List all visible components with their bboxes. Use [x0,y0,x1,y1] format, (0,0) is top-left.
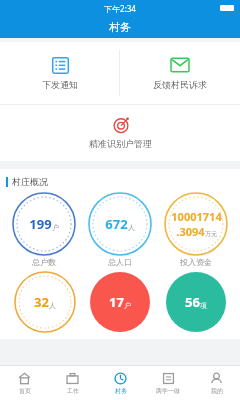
button[interactable]: 10001714 [164,192,228,267]
button[interactable]: 17 [89,271,151,333]
button[interactable]: 反馈村民诉求 [120,42,240,104]
staticText: 首页 [19,387,31,395]
staticText: 下午2:34 [104,3,136,14]
button[interactable]: 工作 [48,366,96,400]
staticText: 672 [105,215,128,233]
staticText: 人 [128,223,135,232]
staticText: 总户数 [32,257,56,267]
staticText: 投入资金 [180,257,212,267]
staticText: 下发通知 [42,79,78,90]
button[interactable]: 两学一做 [144,366,192,400]
staticText: 两学一做 [156,387,180,395]
staticText: 村务 [115,387,127,395]
button[interactable]: 村务 [96,366,144,400]
staticText: 万元 [205,230,217,238]
staticText: 项 [200,301,207,310]
staticText: .3094 [176,224,205,239]
staticText: 工作 [67,387,79,395]
button[interactable]: 下发通知 [0,42,119,104]
staticText: 精准识别户管理 [89,138,152,149]
staticText: 199 [29,215,52,233]
button[interactable]: 首页 [0,366,48,400]
staticText: 总人口 [108,257,132,267]
button[interactable]: 672 [88,192,152,267]
staticText: 56 [185,293,200,311]
button[interactable]: 我的 [192,366,240,400]
staticText: 17 [109,293,124,311]
staticText: 户 [124,301,131,310]
button[interactable]: 精准识别户管理 [0,105,240,161]
staticText: 10001714 [171,209,222,224]
staticText: 村务 [109,20,131,34]
staticText: 户 [52,223,59,232]
button[interactable]: 32 [14,271,76,333]
staticText: 反馈村民诉求 [153,79,207,90]
staticText: 村庄概况 [12,176,48,187]
staticText: 我的 [211,387,223,395]
button[interactable]: 56 [165,271,227,333]
staticText: 人 [49,301,56,310]
button[interactable]: 199 [12,192,76,267]
staticText: 32 [34,293,49,311]
